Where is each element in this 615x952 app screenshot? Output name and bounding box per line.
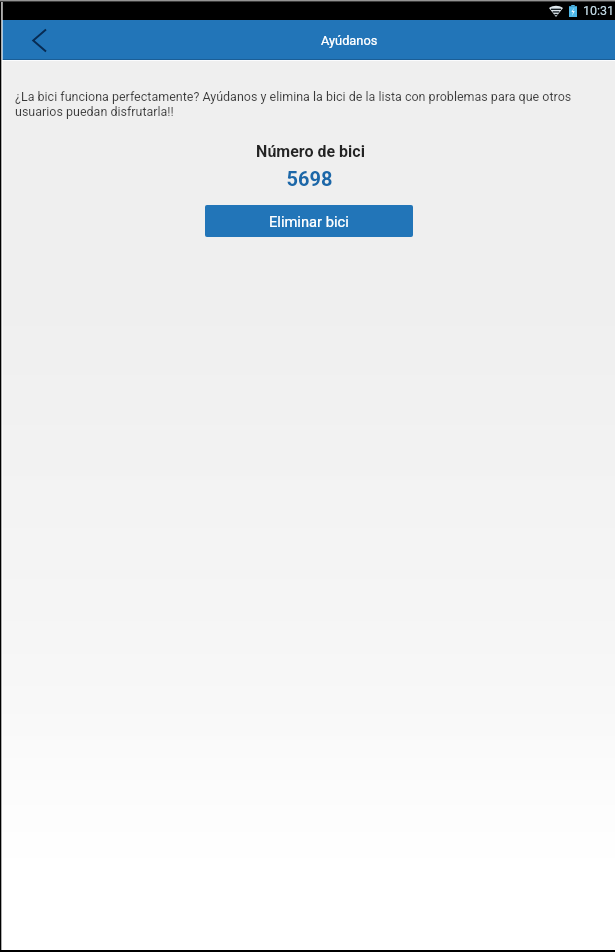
staticText: Ayúdanos (321, 33, 378, 48)
button[interactable]: Back (0, 20, 56, 60)
staticText: 10:31 (583, 3, 615, 18)
button[interactable]: Eliminar bici (205, 205, 413, 237)
staticText: Número de bici (3, 142, 615, 161)
staticText: ¿La bici funciona perfectamente? Ayúdano… (15, 89, 600, 119)
staticText: 5698 (2, 167, 615, 190)
staticText: Eliminar bici (269, 213, 349, 230)
